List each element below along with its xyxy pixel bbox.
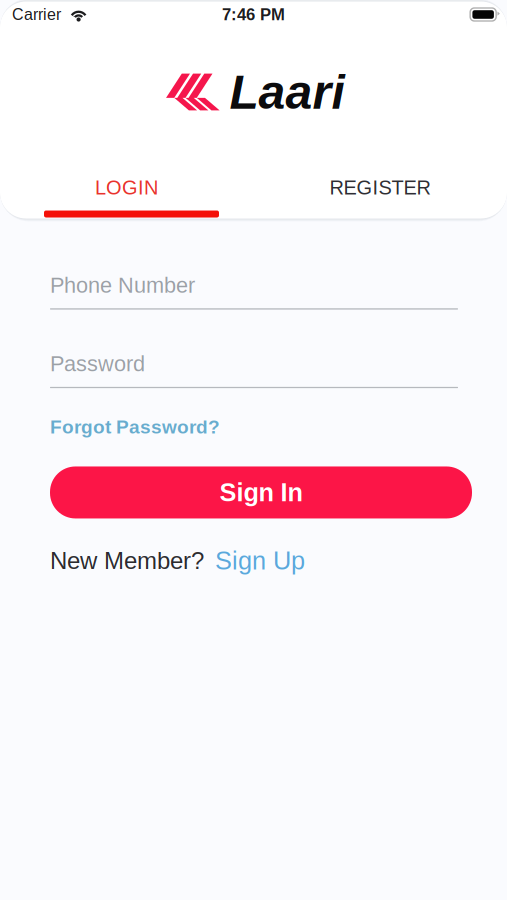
staticText: New Member? [50, 547, 204, 574]
button[interactable]: REGISTER [253, 166, 507, 218]
staticText: Carrier [12, 6, 61, 23]
staticText: Sign In [219, 478, 302, 507]
button[interactable]: Sign In [50, 466, 472, 518]
staticText: Sign Up [215, 546, 305, 575]
staticText: 7:46 PM [222, 5, 285, 24]
staticText: Phone Number [50, 273, 195, 297]
staticText: LOGIN [95, 176, 158, 199]
staticText: Laari [229, 65, 344, 119]
staticText: Forgot Password? [50, 416, 220, 437]
staticText: Password [50, 352, 145, 376]
button[interactable]: Sign Up [215, 546, 305, 575]
staticText: REGISTER [329, 176, 430, 199]
button[interactable]: Forgot Password? [50, 416, 220, 437]
button[interactable]: LOGIN [0, 166, 253, 218]
